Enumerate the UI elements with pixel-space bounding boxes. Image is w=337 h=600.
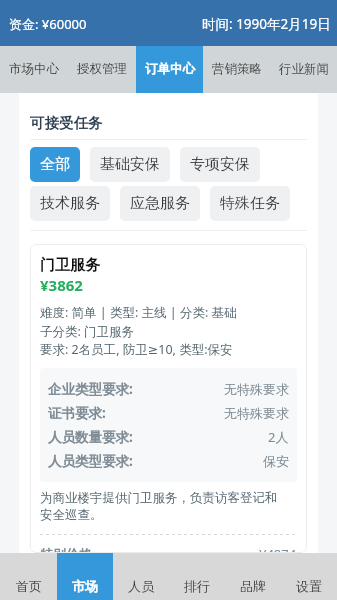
staticText: 排行 xyxy=(184,578,210,594)
staticText: 可接受任务 xyxy=(30,114,103,132)
staticText: 首页 xyxy=(16,578,42,594)
staticText: 无特殊要求 xyxy=(224,381,289,397)
staticText: 授权管理 xyxy=(77,61,127,77)
staticText: 市场 xyxy=(72,578,98,594)
staticText: 设置 xyxy=(296,578,322,594)
staticText: 时间: 1990年2月19日 xyxy=(202,15,331,33)
staticText: 营销策略 xyxy=(212,61,262,77)
staticText: 门卫服务 xyxy=(40,256,100,275)
staticText: ¥4874 xyxy=(259,545,297,553)
staticText: 技术服务 xyxy=(40,194,100,213)
staticText: 订单中心 xyxy=(145,61,195,77)
button[interactable]: 品牌 xyxy=(225,553,281,600)
button[interactable]: 门卫服务 xyxy=(30,244,307,553)
staticText: 基础安保 xyxy=(100,155,160,174)
button[interactable]: 营销策略 xyxy=(203,46,270,93)
button[interactable]: 人员 xyxy=(113,553,169,600)
staticText: 特殊任务 xyxy=(220,194,280,213)
staticText: 为商业楼宇提供门卫服务，负责访客登记和 安全巡查。 xyxy=(40,490,278,523)
button[interactable]: 行业新闻 xyxy=(270,46,337,93)
staticText: 行业新闻 xyxy=(279,61,329,77)
staticText: 专项安保 xyxy=(190,155,250,174)
button[interactable]: 市场中心 xyxy=(0,46,68,93)
button[interactable]: 技术服务 xyxy=(30,186,110,221)
staticText: 2人 xyxy=(268,428,289,446)
staticText: 人员数量要求: xyxy=(48,428,133,446)
button[interactable]: 专项安保 xyxy=(180,147,260,182)
button[interactable]: 特殊任务 xyxy=(210,186,290,221)
staticText: 全部 xyxy=(40,155,70,174)
staticText: 人员 xyxy=(128,578,154,594)
button[interactable]: 应急服务 xyxy=(120,186,200,221)
staticText: 人员类型要求: xyxy=(48,452,133,470)
button[interactable]: 市场 xyxy=(57,553,113,600)
staticText: 品牌 xyxy=(240,578,266,594)
button[interactable]: 基础安保 xyxy=(90,147,170,182)
staticText: ¥3862 xyxy=(40,275,83,295)
staticText: 特别价格: xyxy=(40,545,96,553)
staticText: 市场中心 xyxy=(9,61,59,77)
staticText: 企业类型要求: xyxy=(48,380,133,398)
button[interactable]: 首页 xyxy=(0,553,57,600)
staticText: 难度: 简单 | 类型: 主线 | 分类: 基础 子分类: 门卫服务 要求: 2… xyxy=(40,304,237,358)
button[interactable]: 排行 xyxy=(169,553,225,600)
button[interactable]: 授权管理 xyxy=(68,46,136,93)
staticText: 保安 xyxy=(263,453,289,469)
staticText: 资金: ¥60000 xyxy=(9,15,87,33)
staticText: 无特殊要求 xyxy=(224,405,289,421)
staticText: 应急服务 xyxy=(130,194,190,213)
button[interactable]: 设置 xyxy=(281,553,337,600)
staticText: 证书要求: xyxy=(48,404,106,422)
button[interactable]: 全部 xyxy=(30,147,80,182)
button[interactable]: 订单中心 xyxy=(136,46,203,93)
